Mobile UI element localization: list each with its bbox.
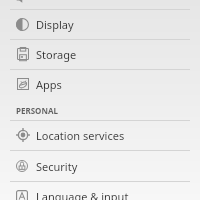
staticText: Location services bbox=[36, 128, 125, 143]
button[interactable]: Location services bbox=[0, 120, 200, 150]
staticText: Security bbox=[36, 159, 78, 174]
button[interactable]: Storage bbox=[0, 39, 200, 69]
staticText: Language & input bbox=[36, 189, 129, 200]
staticText: Storage bbox=[36, 47, 77, 62]
staticText: PERSONAL bbox=[16, 105, 58, 116]
staticText: Apps bbox=[36, 77, 62, 92]
button[interactable]: Security bbox=[0, 151, 200, 181]
button[interactable]: Language & input bbox=[0, 181, 200, 200]
button[interactable]: Apps bbox=[0, 69, 200, 99]
button[interactable]: Sound bbox=[0, 0, 200, 10]
button: PERSONAL bbox=[16, 105, 58, 116]
staticText: Display bbox=[36, 17, 74, 32]
button[interactable]: Display bbox=[0, 9, 200, 39]
